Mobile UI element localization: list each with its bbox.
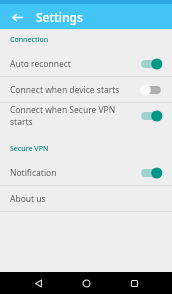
staticText: Settings — [36, 9, 83, 25]
button[interactable]: Notification — [0, 160, 172, 185]
button[interactable]: Auto reconnect — [0, 51, 172, 76]
button[interactable]: Connect when Secure VPN starts — [0, 103, 172, 128]
button[interactable]: Back — [28, 273, 48, 293]
button[interactable]: Recent apps — [124, 273, 144, 293]
staticText: Connect when Secure VPN starts — [10, 104, 139, 128]
button[interactable]: Home — [76, 273, 96, 293]
staticText: Notification — [10, 167, 57, 179]
staticText: Connect when device starts — [10, 84, 120, 96]
button[interactable]: About us — [0, 186, 172, 211]
staticText: Connection — [10, 35, 49, 45]
staticText: Auto reconnect — [10, 58, 71, 70]
staticText: About us — [10, 193, 46, 205]
button[interactable]: Connect when device starts — [0, 77, 172, 102]
button[interactable]: Back — [6, 6, 28, 28]
staticText: Secure VPN — [10, 144, 49, 154]
